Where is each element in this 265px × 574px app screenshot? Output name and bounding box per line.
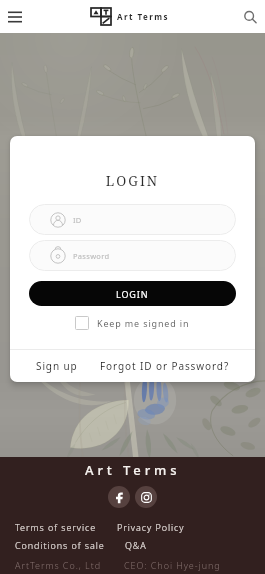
button[interactable]: Forgot ID or Password?: [94, 351, 244, 381]
staticText: LOGIN: [116, 288, 149, 300]
button[interactable]: Terms of service: [15, 521, 97, 533]
staticText: Art Terms: [85, 461, 181, 479]
button[interactable]: Q&A: [125, 539, 147, 551]
staticText: Forgot ID or Password?: [100, 359, 230, 373]
staticText: CEO: Choi Hye-jung: [124, 559, 221, 571]
staticText: Sign up: [36, 359, 78, 373]
button[interactable]: Conditions of sale: [15, 539, 105, 551]
staticText: Keep me signed in: [97, 317, 190, 329]
button[interactable]: Instagram: [135, 486, 157, 508]
staticText: ArtTerms Co., Ltd: [15, 559, 102, 571]
staticText: ID: [73, 215, 82, 225]
button[interactable]: LOGIN: [29, 281, 236, 306]
button[interactable]: Keep me signed in: [10, 316, 255, 330]
button[interactable]: Facebook: [108, 486, 130, 508]
button[interactable]: Search: [235, 0, 265, 33]
button[interactable]: Privacy Policy: [117, 521, 185, 533]
staticText: Art Terms: [117, 11, 169, 22]
button[interactable]: Menu: [0, 0, 30, 33]
staticText: Password: [73, 251, 110, 261]
staticText: LOGIN: [10, 172, 255, 190]
button[interactable]: Sign up: [22, 351, 84, 381]
button[interactable]: Password: [29, 240, 236, 271]
button[interactable]: ID: [29, 204, 236, 235]
